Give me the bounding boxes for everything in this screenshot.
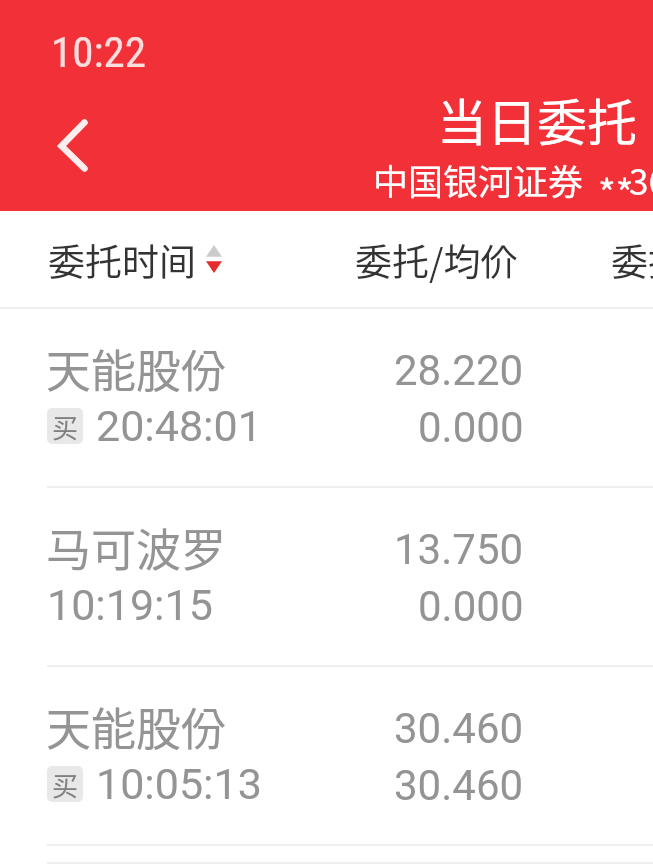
staticText: 30.460 [394,704,524,753]
staticText: 30.460 [394,761,524,810]
button[interactable]: 委托数量 [528,211,653,309]
staticText: 0.000 [418,582,524,631]
staticText: ** [598,164,634,219]
staticText: 13.750 [394,525,524,574]
button[interactable]: 马可波罗 [0,488,653,667]
staticText: 中国银河证券 [373,154,584,205]
staticText: 10:19:15 [47,580,213,630]
staticText: 委托时间 [48,233,196,287]
staticText: 委托/均价 [355,233,518,287]
staticText: 天能股份 [46,336,227,401]
staticText: 3688 [629,154,653,205]
button[interactable]: 中国平安 [0,846,653,864]
staticText: 天能股份 [46,694,227,759]
staticText: 28.220 [394,346,524,395]
staticText: 买 [52,408,79,444]
button[interactable]: 天能股份 [0,309,653,488]
staticText: 10:22 [51,27,146,77]
staticText: 当日委托 [437,83,637,155]
button[interactable]: Back [26,100,120,192]
button[interactable]: 委托时间 [48,211,306,309]
button[interactable]: 委托/均价 [306,211,528,309]
staticText: 马可波罗 [46,515,227,580]
staticText: 委托数量 [611,233,653,287]
button[interactable]: 天能股份 [0,667,653,846]
staticText: 0.000 [418,403,524,452]
staticText: 买 [52,766,79,802]
staticText: 10:05:13 [96,759,262,809]
staticText: 20:48:01 [96,401,262,451]
